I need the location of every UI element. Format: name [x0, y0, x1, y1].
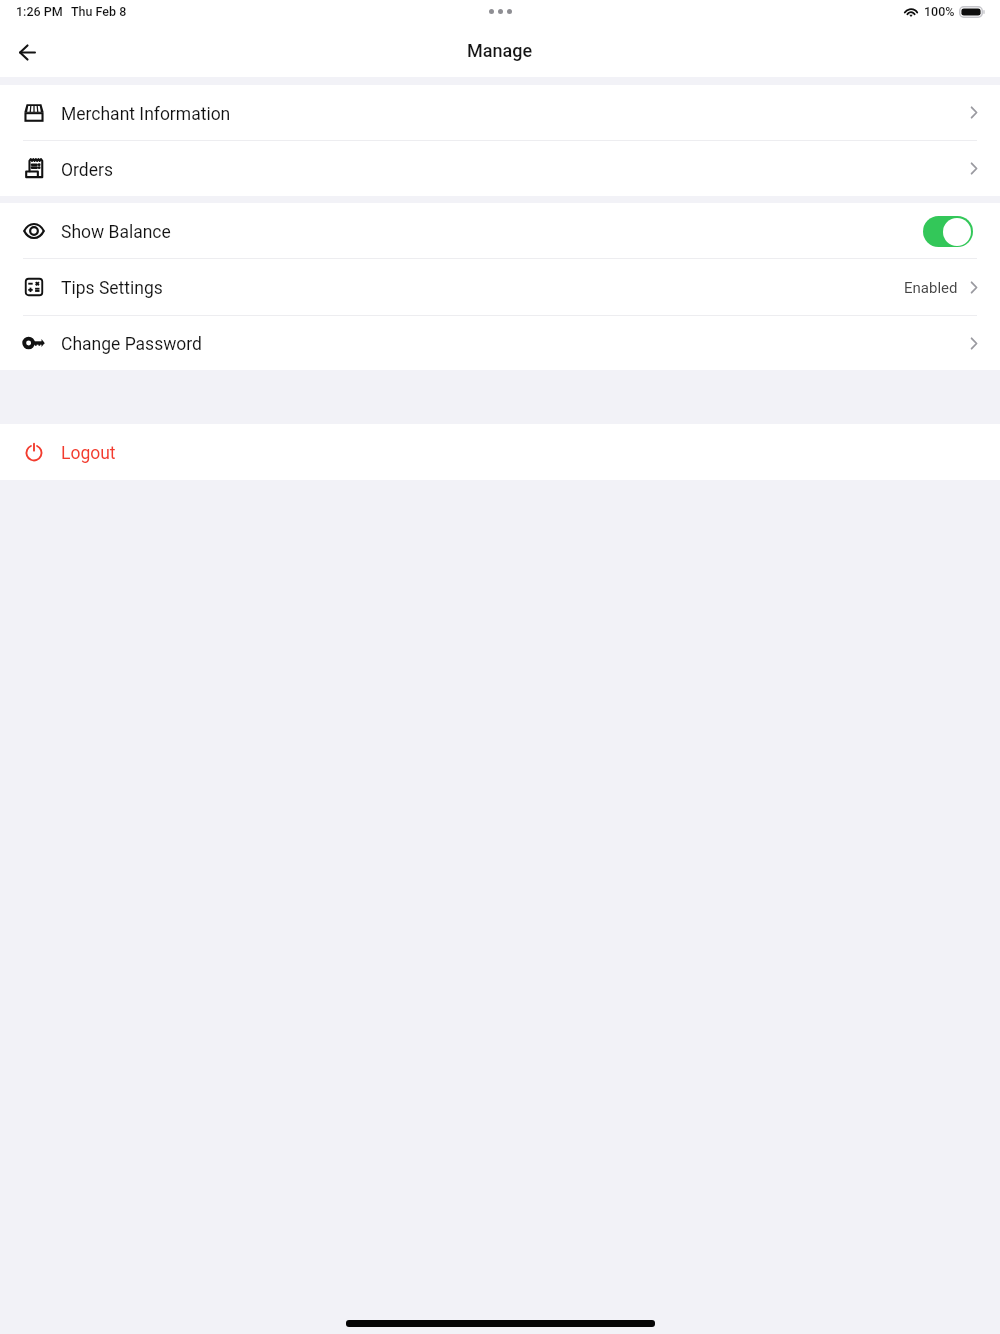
button[interactable]: Change Password	[0, 316, 1000, 370]
button[interactable]: Tips Settings	[0, 259, 1000, 315]
staticText: Enabled	[904, 279, 958, 297]
staticText: Logout	[61, 443, 116, 464]
staticText: Show Balance	[61, 222, 171, 243]
button[interactable]: Logout	[0, 424, 1000, 480]
button[interactable]: Show Balance toggle	[923, 216, 973, 247]
staticText: Merchant Information	[61, 104, 231, 125]
staticText: Tips Settings	[61, 278, 163, 299]
staticText: 100%	[924, 4, 955, 19]
staticText: 1:26 PM	[16, 4, 63, 19]
staticText: Thu Feb 8	[71, 4, 127, 19]
button[interactable]: Show Balance	[0, 203, 1000, 258]
staticText: Manage	[467, 40, 533, 61]
button[interactable]: Orders	[0, 141, 1000, 196]
staticText: Orders	[61, 160, 113, 181]
button[interactable]: Merchant Information	[0, 85, 1000, 140]
staticText: Change Password	[61, 334, 202, 355]
button[interactable]: Back	[8, 33, 46, 71]
